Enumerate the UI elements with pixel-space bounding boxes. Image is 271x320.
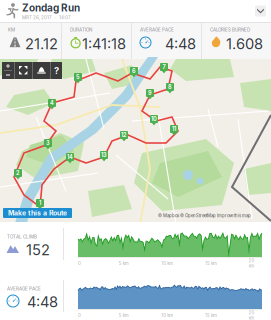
staticText: 10 km — [161, 313, 173, 318]
button[interactable]: Full screen — [15, 62, 32, 79]
staticText: TOTAL CLIMB — [7, 234, 37, 239]
staticText: 5 km — [119, 261, 129, 266]
button[interactable]: Collapse — [255, 5, 266, 16]
staticText: © Mapbox © OpenStreetMap Improve this ma… — [158, 213, 251, 218]
staticText: 152 — [26, 241, 50, 259]
staticText: 1 — [39, 200, 41, 206]
staticText: 20 km — [249, 310, 255, 320]
button[interactable]: Zoom out — [2, 71, 14, 79]
staticText: 0 — [78, 313, 81, 318]
staticText: 15 km — [205, 261, 217, 266]
button[interactable]: Map layers — [33, 62, 50, 79]
staticText: CALORIES BURNED — [210, 27, 250, 32]
staticText: KM — [8, 27, 15, 32]
staticText: 13 — [101, 152, 107, 158]
staticText: 5 km — [119, 313, 129, 318]
staticText: AVERAGE PACE — [7, 286, 41, 291]
staticText: DURATION — [70, 27, 92, 32]
staticText: Zondag Run — [22, 2, 80, 14]
staticText: 4:48 — [27, 293, 58, 311]
staticText: 1:41:18 — [82, 35, 126, 53]
staticText: 5 — [76, 74, 80, 80]
staticText: 0 — [78, 261, 81, 266]
staticText: 12 — [121, 132, 127, 138]
button[interactable]: Help — [51, 62, 62, 79]
button[interactable]: Make this a Route — [3, 208, 72, 218]
staticText: 10 km — [161, 261, 173, 266]
staticText: MRT 26, 2017 · 14:07 — [22, 15, 71, 20]
staticText: ? — [54, 65, 59, 76]
staticText: 8 — [168, 84, 172, 90]
staticText: Make this a Route — [8, 209, 67, 217]
staticText: 3 — [46, 140, 50, 146]
staticText: 4:48 — [165, 35, 196, 53]
staticText: 2 — [16, 170, 20, 176]
staticText: 9 — [148, 90, 152, 96]
staticText: 15 km — [205, 313, 217, 318]
staticText: 4 — [50, 100, 54, 106]
staticText: 7 — [162, 64, 165, 70]
staticText: 10 — [151, 116, 157, 122]
staticText: 1.608 — [226, 35, 263, 53]
staticText: 6 — [132, 68, 136, 74]
staticText: AVERAGE PACE — [140, 27, 174, 32]
staticText: 20 km — [249, 258, 255, 269]
staticText: 11 — [172, 126, 176, 132]
staticText: 14 — [67, 154, 73, 160]
button[interactable]: Zoom in — [2, 62, 14, 70]
staticText: 21.12 — [25, 35, 58, 53]
